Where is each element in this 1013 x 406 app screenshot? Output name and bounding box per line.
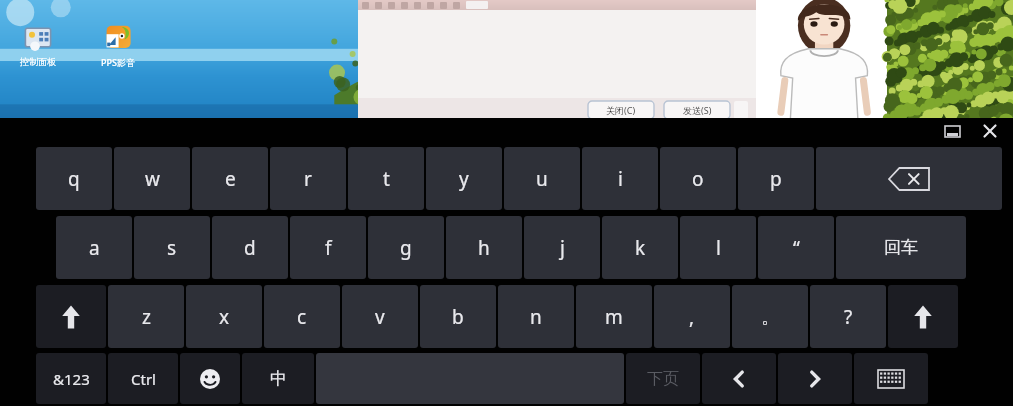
staticText: 发送(S) [683,104,712,116]
button[interactable]: n [498,285,574,348]
button[interactable]: 控制面板 [8,24,68,67]
button[interactable]: k [602,216,678,279]
button[interactable]: h [446,216,522,279]
staticText: 中 [270,368,287,389]
staticText: t [383,166,390,192]
staticText: m [605,304,623,330]
staticText: b [452,304,464,330]
button[interactable]: i [582,147,658,210]
staticText: f [325,235,332,261]
staticText: o [692,166,704,192]
button[interactable]: f [290,216,366,279]
button[interactable]: 下页 [626,353,700,404]
button[interactable]: c [264,285,340,348]
staticText: , [689,304,695,330]
staticText: c [297,304,307,330]
button[interactable]: Backspace [816,147,1002,210]
button[interactable]: b [420,285,496,348]
button[interactable]: PPS影音 [88,24,148,68]
button[interactable]: “ [758,216,834,279]
button[interactable]: &123 [36,353,106,404]
button[interactable]: g [368,216,444,279]
staticText: &123 [53,369,90,389]
staticText: 控制面板 [20,56,56,67]
button[interactable]: j [524,216,600,279]
button[interactable]: 。 [732,285,808,348]
button[interactable]: m [576,285,652,348]
button[interactable]: More [734,101,748,119]
staticText: w [145,166,160,192]
staticText: u [536,166,548,192]
button[interactable]: l [680,216,756,279]
button[interactable]: 发送(S) [664,101,730,119]
button[interactable]: Ctrl [108,353,178,404]
staticText: j [560,235,565,261]
button[interactable]: 中 [242,353,314,404]
button[interactable]: o [660,147,736,210]
staticText: i [618,166,623,192]
staticText: 下页 [647,369,679,389]
staticText: n [530,304,542,330]
button[interactable]: , [654,285,730,348]
button[interactable]: Shift [36,285,106,348]
button[interactable]: Close [977,118,1003,144]
button[interactable]: Hide keyboard [854,353,928,404]
staticText: ? [844,304,853,330]
button[interactable]: q [36,147,112,210]
staticText: h [478,235,490,261]
button[interactable]: p [738,147,814,210]
button[interactable]: v [342,285,418,348]
button[interactable]: a [56,216,132,279]
button[interactable]: Emoji [180,353,240,404]
staticText: g [400,235,412,261]
staticText: 关闭(C) [606,104,636,116]
staticText: l [716,235,721,261]
staticText: 回车 [884,237,918,258]
button[interactable]: e [192,147,268,210]
staticText: k [635,235,646,261]
button[interactable]: Minimize [939,118,965,144]
button[interactable]: Previous [702,353,776,404]
staticText: a [89,235,100,261]
staticText: PPS影音 [101,56,135,68]
button[interactable]: u [504,147,580,210]
button[interactable]: w [114,147,190,210]
staticText: v [375,304,385,330]
staticText: d [244,235,256,261]
button[interactable]: 回车 [836,216,966,279]
button[interactable]: t [348,147,424,210]
staticText: 。 [761,305,780,329]
staticText: q [68,166,80,192]
staticText: “ [793,235,800,261]
button[interactable]: s [134,216,210,279]
button[interactable]: ? [810,285,886,348]
button[interactable]: Next [778,353,852,404]
staticText: p [770,166,782,192]
staticText: y [459,166,469,192]
staticText: r [304,166,312,192]
staticText: x [219,304,230,330]
button[interactable]: z [108,285,184,348]
button[interactable]: y [426,147,502,210]
staticText: z [142,304,151,330]
button[interactable]: Shift [888,285,958,348]
button[interactable]: x [186,285,262,348]
button[interactable]: 关闭(C) [588,101,654,119]
staticText: e [225,166,236,192]
staticText: s [167,235,177,261]
staticText: Ctrl [131,369,156,389]
button[interactable]: r [270,147,346,210]
button[interactable]: d [212,216,288,279]
